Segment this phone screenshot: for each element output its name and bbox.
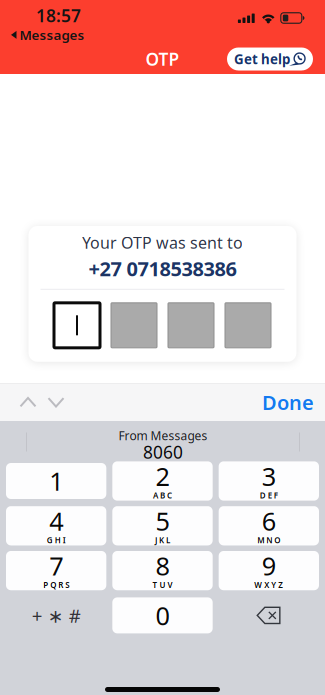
button[interactable]: 7 bbox=[6, 553, 106, 589]
button[interactable]: 9 bbox=[219, 553, 319, 589]
staticText: 4 bbox=[49, 504, 63, 538]
button[interactable]: 3 bbox=[219, 463, 319, 499]
button[interactable]: 6 bbox=[219, 508, 319, 544]
staticText: Done bbox=[262, 389, 314, 416]
button[interactable]: Previous field bbox=[14, 385, 42, 419]
button[interactable]: 0 bbox=[112, 597, 213, 633]
staticText: +27 0718538386 bbox=[88, 255, 236, 282]
staticText: P Q R S bbox=[43, 580, 69, 590]
staticText: 7 bbox=[49, 549, 63, 583]
staticText: 18:57 bbox=[36, 4, 81, 27]
staticText: OTP bbox=[145, 47, 179, 70]
staticText: T U V bbox=[152, 580, 172, 590]
staticText: 8 bbox=[155, 549, 169, 583]
staticText: D E F bbox=[260, 490, 278, 501]
button[interactable]: Messages bbox=[0, 27, 84, 44]
staticText: 8060 bbox=[143, 440, 183, 463]
staticText: 2 bbox=[155, 459, 169, 493]
staticText: From Messages bbox=[118, 427, 207, 443]
staticText: M N O bbox=[257, 535, 280, 545]
staticText: 3 bbox=[262, 459, 276, 493]
button[interactable]: 8 bbox=[112, 553, 213, 589]
staticText: Your OTP was sent to bbox=[82, 232, 243, 253]
button[interactable]: Done bbox=[258, 385, 318, 419]
staticText: Messages bbox=[19, 26, 84, 44]
staticText: J K L bbox=[155, 535, 170, 545]
button[interactable]: 1 bbox=[6, 463, 106, 499]
button[interactable]: 2 bbox=[112, 463, 213, 499]
staticText: 1 bbox=[49, 464, 63, 498]
staticText: A B C bbox=[153, 490, 172, 501]
staticText: G H I bbox=[47, 535, 66, 545]
button[interactable]: 5 bbox=[112, 508, 213, 544]
button[interactable]: 4 bbox=[6, 508, 106, 544]
staticText: Get help bbox=[234, 50, 290, 68]
staticText: 9 bbox=[262, 549, 276, 583]
button[interactable]: Next field bbox=[42, 385, 70, 419]
staticText: + ∗ # bbox=[32, 603, 81, 628]
button[interactable]: Get help bbox=[227, 47, 313, 70]
staticText: W X Y Z bbox=[254, 580, 283, 590]
staticText: 0 bbox=[155, 599, 169, 632]
staticText: 5 bbox=[155, 504, 169, 538]
button[interactable]: + ∗ # bbox=[6, 597, 106, 633]
staticText: 6 bbox=[262, 504, 276, 538]
button[interactable]: Delete bbox=[219, 597, 319, 633]
